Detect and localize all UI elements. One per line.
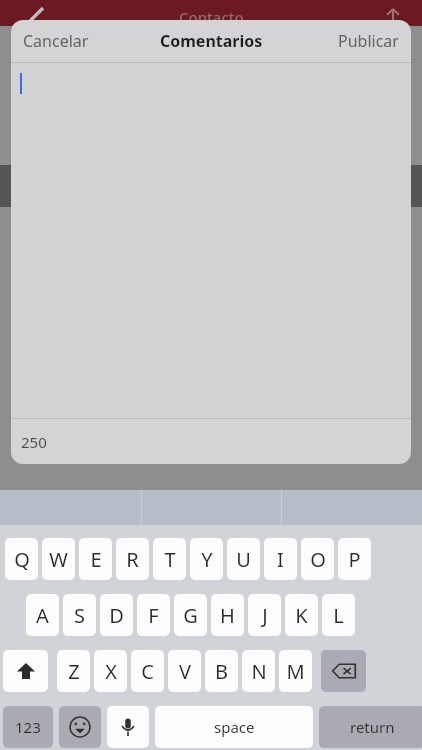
button[interactable]: return xyxy=(319,706,422,748)
button[interactable]: A xyxy=(26,594,59,636)
staticText: O xyxy=(310,546,326,573)
button[interactable]: I xyxy=(264,538,297,580)
staticText: Y xyxy=(201,546,213,573)
staticText: K xyxy=(295,602,308,629)
button[interactable]: O xyxy=(301,538,334,580)
staticText: return xyxy=(350,717,395,737)
button[interactable]: Backspace xyxy=(321,650,366,692)
button[interactable]: E xyxy=(79,538,112,580)
staticText: A xyxy=(36,602,49,629)
button[interactable]: Z xyxy=(57,650,90,692)
button[interactable]: K xyxy=(285,594,318,636)
staticText: T xyxy=(164,546,176,573)
staticText: Publicar xyxy=(338,30,399,52)
staticText: V xyxy=(179,658,191,685)
staticText: X xyxy=(105,658,117,685)
staticText: U xyxy=(236,546,251,573)
button[interactable]: space xyxy=(155,706,313,748)
button[interactable]: U xyxy=(227,538,260,580)
button[interactable]: Emoji xyxy=(59,706,101,748)
staticText: B xyxy=(215,658,228,685)
button[interactable]: M xyxy=(279,650,312,692)
staticText: S xyxy=(74,602,85,629)
button[interactable]: Q xyxy=(5,538,38,580)
button[interactable]: Shift xyxy=(3,650,48,692)
button[interactable]: 123 xyxy=(3,706,53,748)
button[interactable]: F xyxy=(137,594,170,636)
button[interactable]: S xyxy=(63,594,96,636)
button[interactable]: T xyxy=(153,538,186,580)
staticText: space xyxy=(214,717,255,737)
staticText: N xyxy=(251,658,267,685)
staticText: P xyxy=(348,546,361,573)
button[interactable]: N xyxy=(242,650,275,692)
staticText: G xyxy=(183,602,198,629)
button[interactable]: G xyxy=(174,594,207,636)
staticText: J xyxy=(262,602,268,629)
button[interactable]: W xyxy=(42,538,75,580)
button[interactable]: Dictation xyxy=(107,706,149,748)
other: Edit xyxy=(26,3,46,23)
button[interactable]: X xyxy=(94,650,127,692)
staticText: Comentarios xyxy=(160,30,263,52)
staticText: Contacto xyxy=(179,7,244,27)
button[interactable]: B xyxy=(205,650,238,692)
button[interactable]: Publicar xyxy=(326,22,411,60)
staticText: 123 xyxy=(15,717,41,737)
button[interactable]: P xyxy=(338,538,371,580)
staticText: W xyxy=(49,546,68,573)
button[interactable]: D xyxy=(100,594,133,636)
staticText: E xyxy=(90,546,102,573)
other: Share xyxy=(384,9,402,27)
staticText: L xyxy=(333,602,344,629)
staticText: D xyxy=(109,602,124,629)
button[interactable]: R xyxy=(116,538,149,580)
button[interactable]: Cancelar xyxy=(11,22,101,60)
button[interactable]: Y xyxy=(190,538,223,580)
staticText: R xyxy=(126,546,139,573)
button[interactable]: L xyxy=(322,594,355,636)
staticText: C xyxy=(141,658,154,685)
button[interactable]: C xyxy=(131,650,164,692)
staticText: 250 xyxy=(21,432,47,452)
staticText: Q xyxy=(14,546,30,573)
staticText: Cancelar xyxy=(23,30,89,52)
button[interactable]: H xyxy=(211,594,244,636)
staticText: I xyxy=(277,546,284,573)
staticText: Z xyxy=(68,658,80,685)
button[interactable]: J xyxy=(248,594,281,636)
staticText: H xyxy=(220,602,235,629)
staticText: F xyxy=(148,602,159,629)
button[interactable]: V xyxy=(168,650,201,692)
staticText: M xyxy=(286,658,305,685)
